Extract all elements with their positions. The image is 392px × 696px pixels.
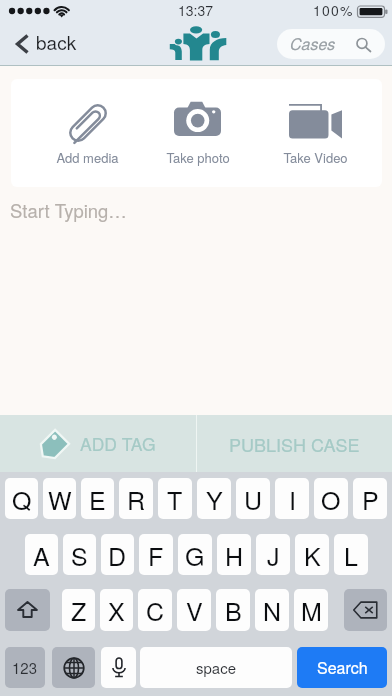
button[interactable]: K [295,534,329,575]
button[interactable]: C [138,589,172,631]
button[interactable]: U [236,478,270,519]
button[interactable]: Add media [16,79,159,187]
button[interactable]: P [353,478,387,519]
button[interactable]: R [119,478,153,519]
staticText: W [48,481,72,517]
staticText: T [167,481,183,517]
staticText: Cases [289,32,335,55]
button[interactable]: Search [297,647,387,688]
staticText: E [89,481,106,517]
button[interactable]: M [294,589,328,631]
staticText: L [344,537,358,573]
button[interactable]: Next keyboard [52,647,95,688]
staticText: X [108,592,125,628]
staticText: V [186,592,203,628]
staticText: PUBLISH CASE [229,431,360,457]
button[interactable]: H [217,534,251,575]
staticText: 13:37 [178,0,214,20]
button[interactable]: O [314,478,348,519]
button[interactable]: Backspace [344,589,387,631]
staticText: U [244,481,263,517]
button[interactable]: D [101,534,134,575]
staticText: Take Video [283,148,348,167]
button[interactable]: I [275,478,309,519]
staticText: Search [317,656,368,679]
button[interactable]: Shift [5,589,50,631]
button[interactable]: J [256,534,290,575]
button[interactable]: back [0,21,89,66]
staticText: 100% [313,0,354,20]
staticText: C [146,592,165,628]
staticText: M [301,592,322,628]
staticText: Add media [56,148,119,167]
staticText: A [33,537,50,573]
button[interactable]: Q [5,478,38,519]
button[interactable]: Take Video [244,79,382,187]
button[interactable]: Dictate [101,647,136,688]
button[interactable]: W [43,478,76,519]
button[interactable]: Take photo [126,79,269,187]
button[interactable]: Z [62,589,95,631]
staticText: P [362,481,379,517]
staticText: back [36,28,77,55]
staticText: I [289,481,296,517]
staticText: Y [206,481,223,517]
button[interactable]: N [255,589,289,631]
staticText: Z [71,592,87,628]
staticText: O [321,481,341,517]
staticText: F [148,537,164,573]
button[interactable]: PUBLISH CASE [197,415,392,472]
button[interactable]: S [63,534,96,575]
button[interactable]: E [81,478,114,519]
staticText: J [267,537,280,573]
staticText: S [71,537,88,573]
button[interactable]: F [139,534,173,575]
button[interactable]: 123 [5,647,45,688]
button[interactable]: T [158,478,192,519]
button[interactable]: B [216,589,250,631]
button[interactable]: Y [197,478,231,519]
staticText: ADD TAG [80,431,156,456]
staticText: N [263,592,282,628]
button[interactable]: A [25,534,58,575]
staticText: Start Typing… [10,197,127,223]
staticText: Q [12,481,32,517]
staticText: D [108,537,127,573]
button[interactable]: space [140,647,292,688]
staticText: B [225,592,242,628]
staticText: 123 [12,657,38,678]
staticText: space [196,657,237,678]
staticText: K [304,537,321,573]
button[interactable]: L [334,534,368,575]
button[interactable]: G [178,534,212,575]
button[interactable]: V [177,589,211,631]
button[interactable]: Cases [277,29,385,59]
staticText: H [225,537,244,573]
staticText: R [127,481,146,517]
button[interactable]: ADD TAG [0,415,196,472]
staticText: Take photo [166,148,230,167]
button[interactable]: X [100,589,133,631]
staticText: G [185,537,205,573]
